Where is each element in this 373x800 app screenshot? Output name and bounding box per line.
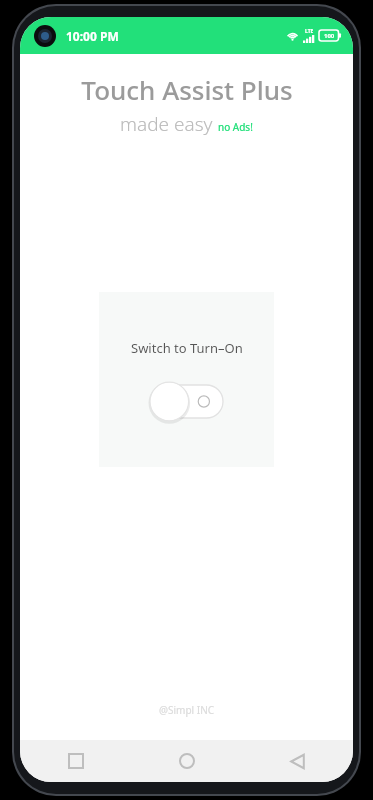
staticText: LTE bbox=[305, 28, 314, 35]
button[interactable]: Toggle touch assist bbox=[151, 385, 223, 418]
staticText: 10:00 PM bbox=[66, 28, 119, 44]
staticText: no Ads! bbox=[218, 120, 253, 134]
button[interactable]: Switch to Turn–On bbox=[99, 292, 274, 467]
button[interactable]: Back bbox=[277, 741, 317, 781]
staticText: 100 bbox=[324, 32, 335, 40]
button[interactable]: Home bbox=[167, 741, 207, 781]
button[interactable]: Recent apps bbox=[56, 741, 96, 781]
staticText: Switch to Turn–On bbox=[131, 339, 243, 357]
staticText: Touch Assist Plus bbox=[81, 72, 293, 107]
staticText: made easy bbox=[120, 111, 213, 137]
staticText: @Simpl INC bbox=[159, 703, 215, 717]
